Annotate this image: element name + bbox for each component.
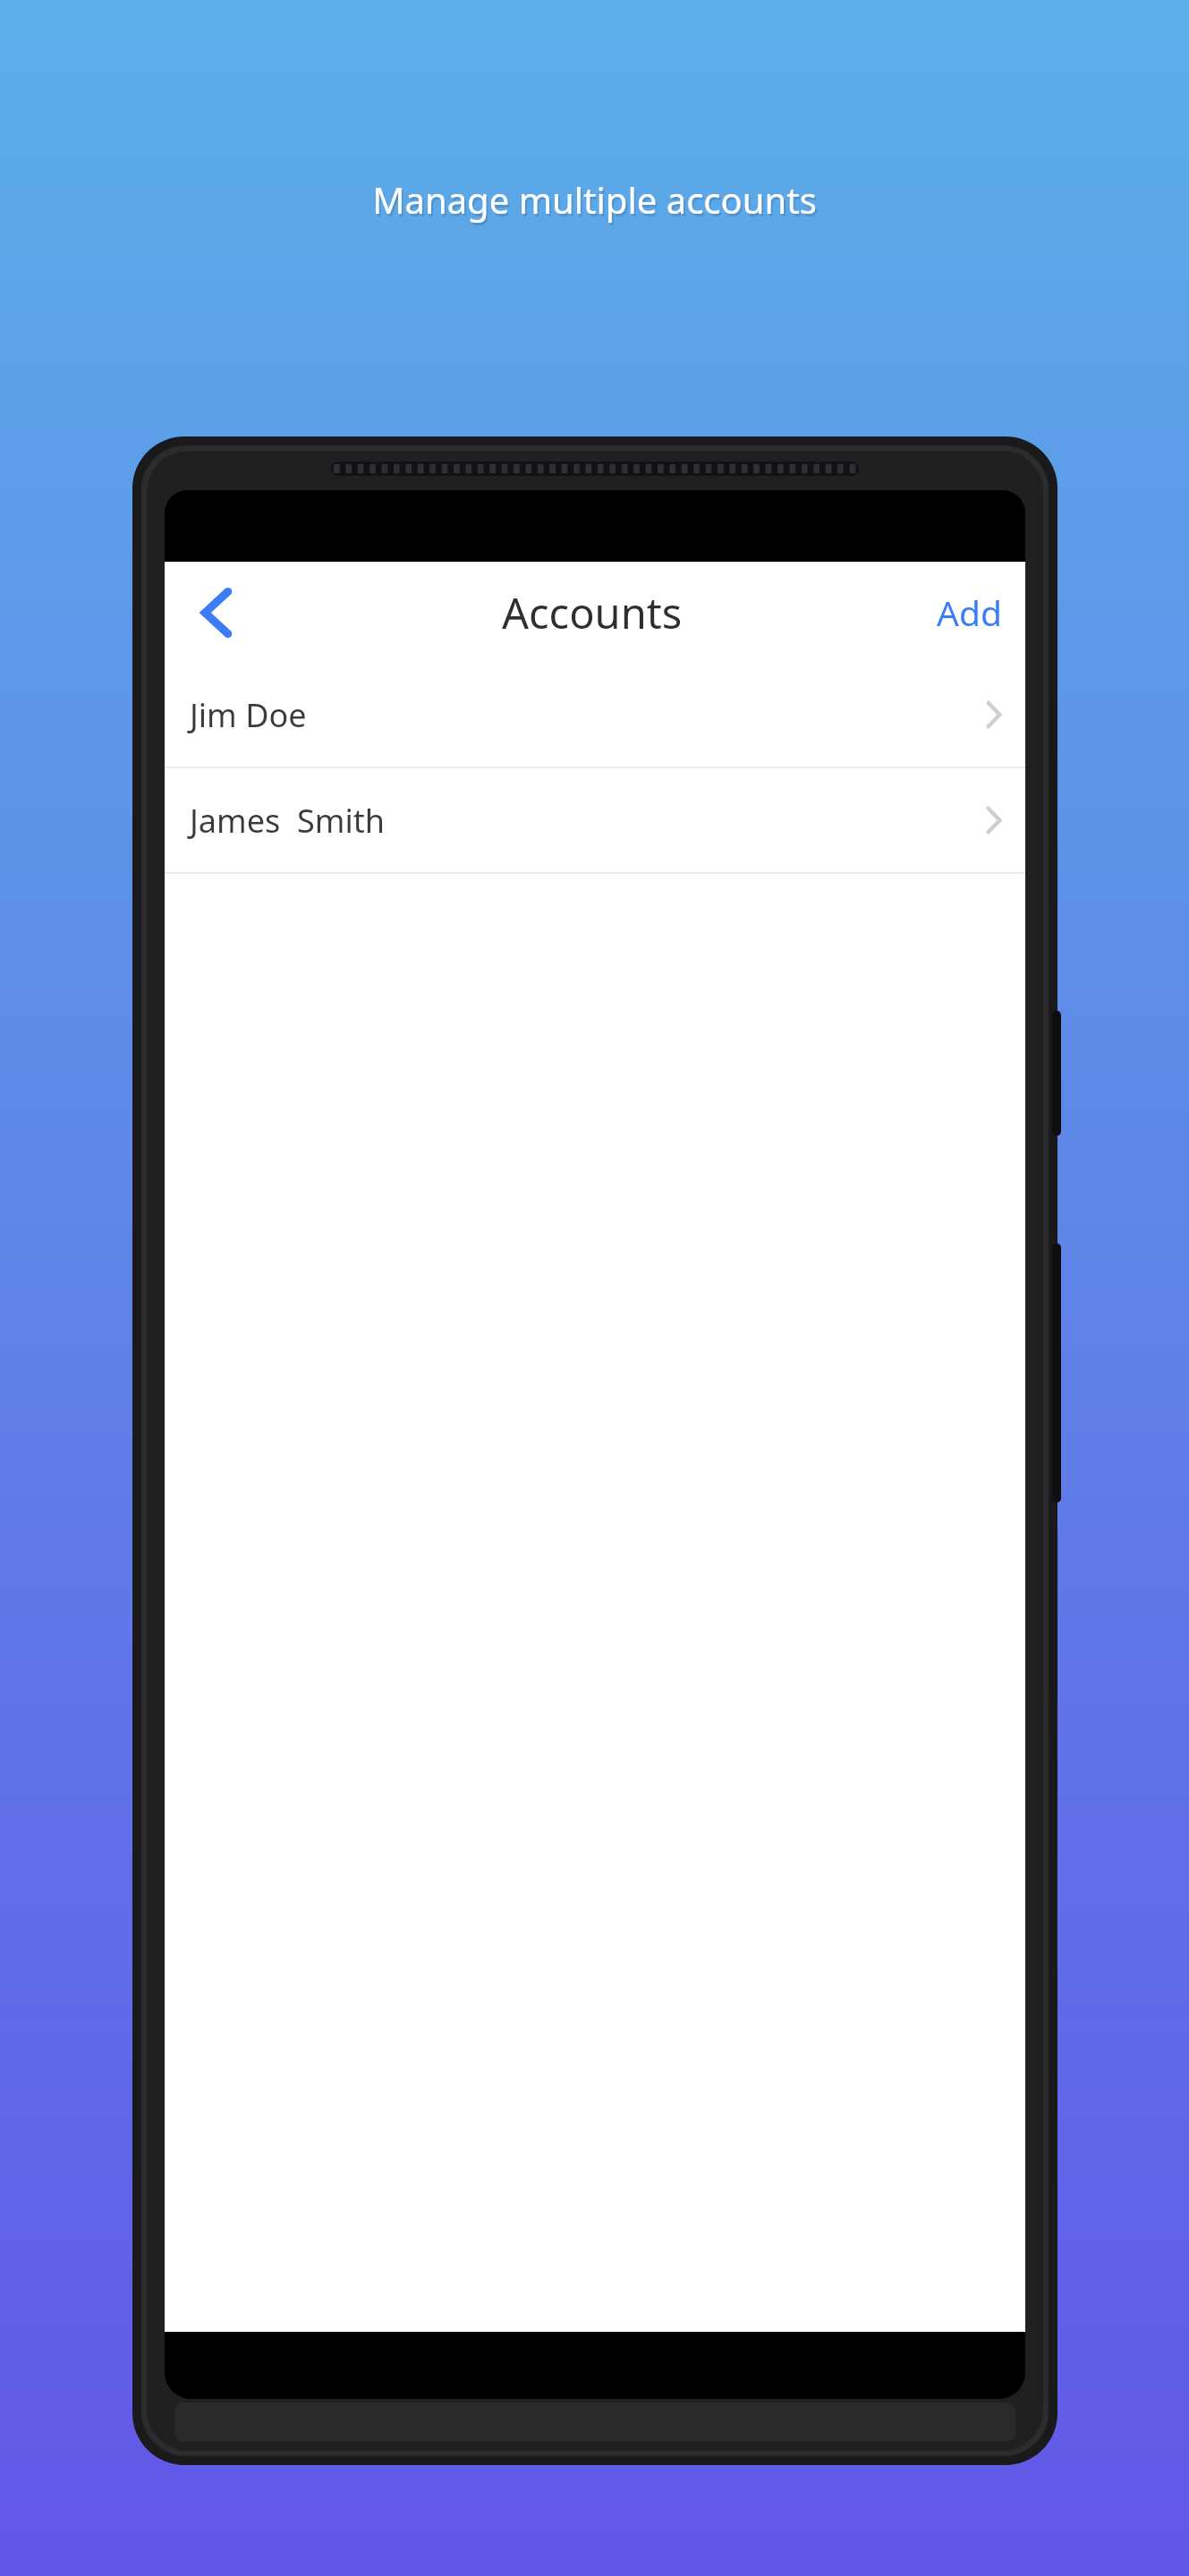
button[interactable]: Jim Doe xyxy=(165,663,1025,767)
button[interactable]: James Smith xyxy=(165,768,1025,872)
staticText: Manage multiple accounts xyxy=(0,175,1189,224)
staticText: Jim Doe xyxy=(190,693,307,737)
staticText: Add xyxy=(937,589,1002,636)
staticText: Manage multiple accounts xyxy=(2,178,1189,226)
button[interactable]: Back xyxy=(174,570,259,656)
staticText: Accounts xyxy=(502,584,683,641)
staticText: James Smith xyxy=(190,799,385,843)
button[interactable]: Add xyxy=(913,562,1025,663)
